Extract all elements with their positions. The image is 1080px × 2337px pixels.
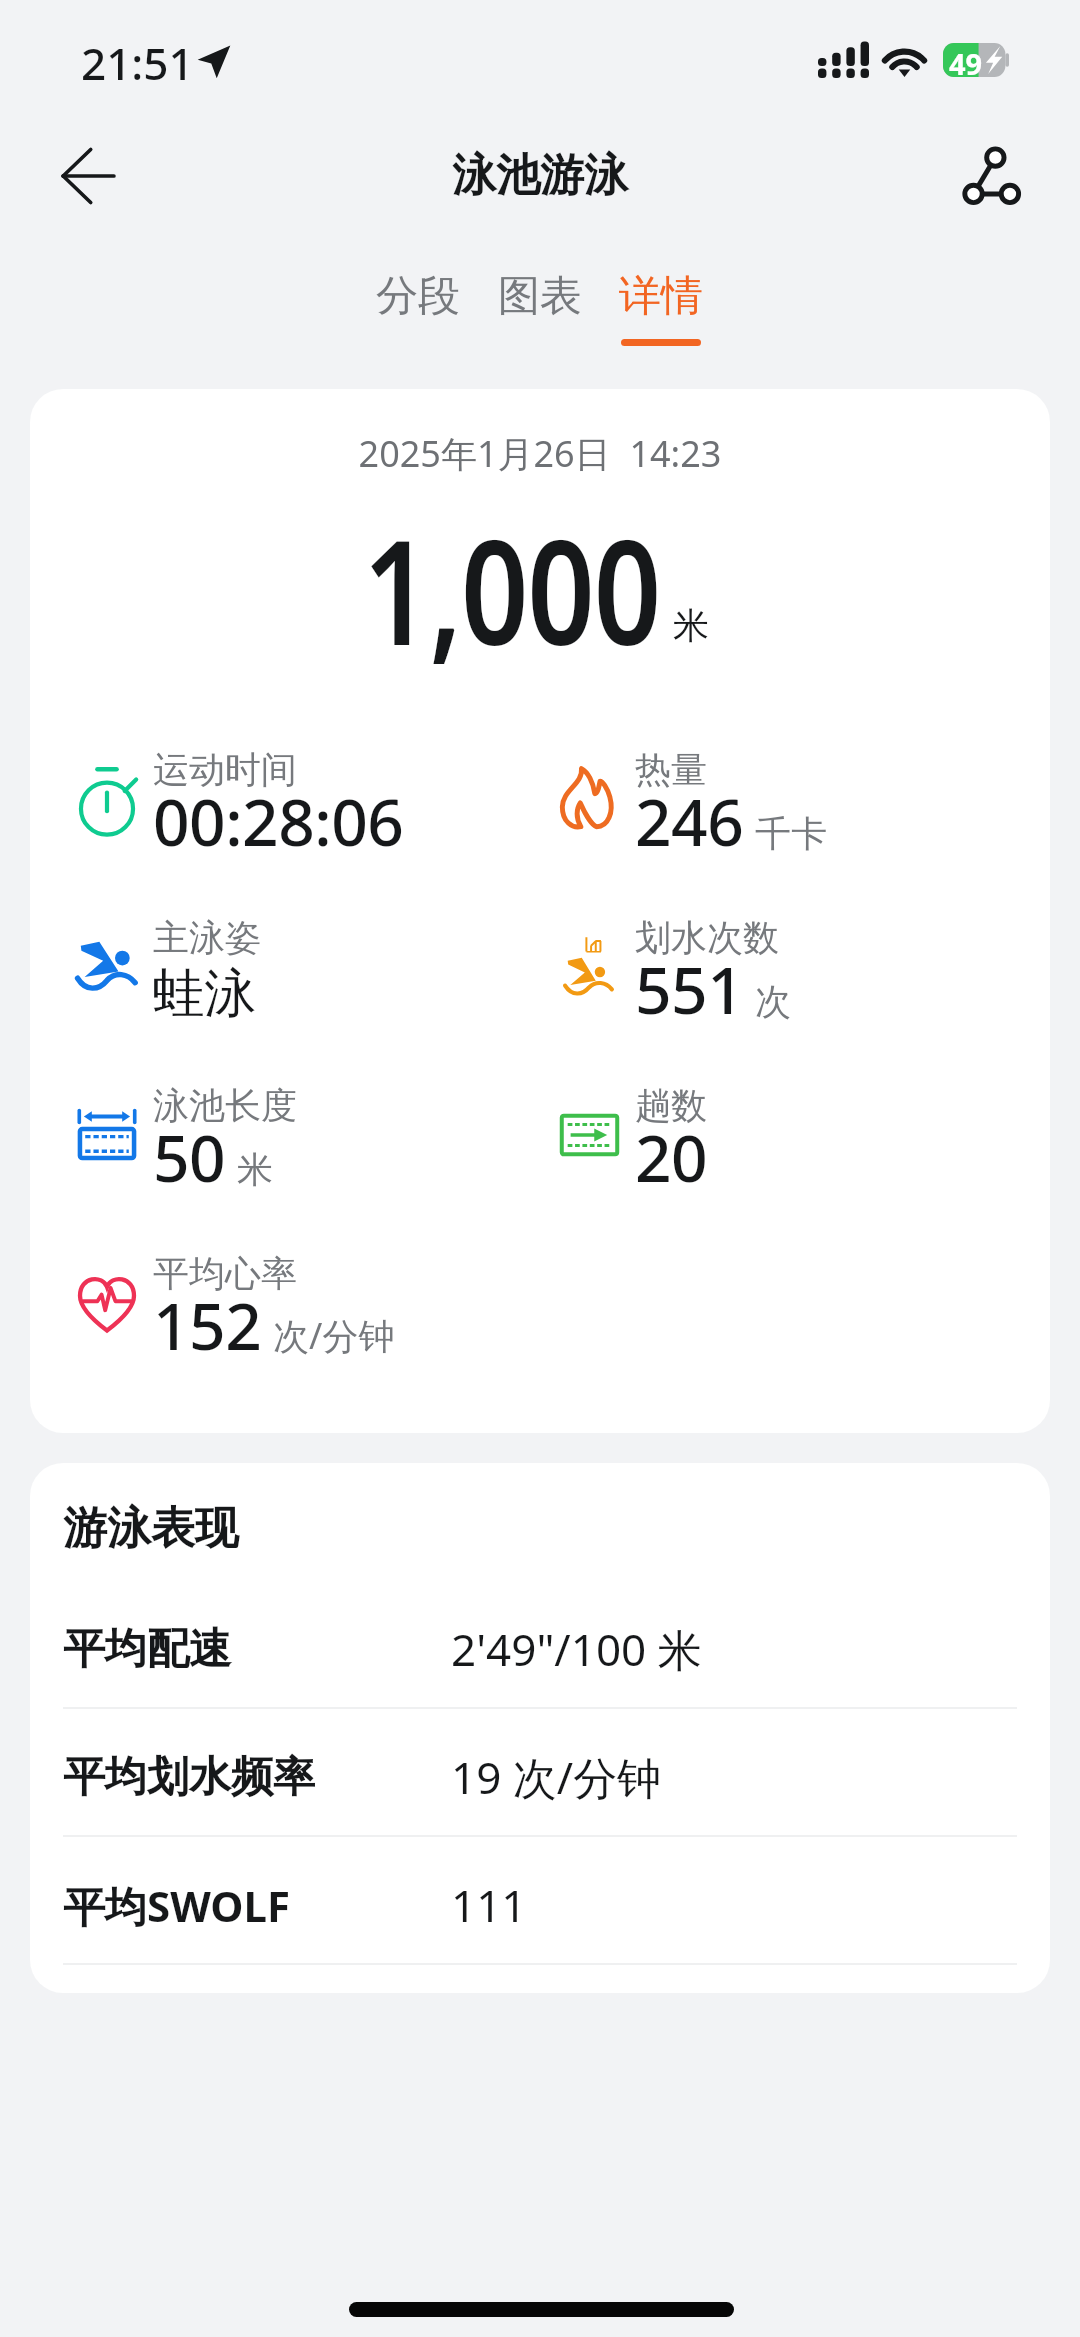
staticText: 平均SWOLF [63, 1877, 484, 1934]
staticText: 246 [635, 778, 744, 865]
staticText: 49 [949, 44, 983, 78]
staticText: 热量 [635, 747, 707, 792]
staticText: 50 [153, 1114, 226, 1201]
staticText: 平均配速 [63, 1623, 484, 1676]
staticText: 2025年1月26日 14:23 [30, 429, 1050, 478]
staticText: 详情 [619, 270, 703, 323]
staticText: 米 [673, 603, 709, 648]
button[interactable]: Back [36, 124, 140, 228]
staticText: 分段 [376, 270, 460, 323]
staticText: 111 [451, 1875, 527, 1935]
staticText: 551 [635, 946, 744, 1033]
button[interactable]: 平均划水频率 [30, 1713, 1050, 1841]
staticText: 1,000 [363, 491, 661, 687]
staticText: 游泳表现 [63, 1501, 239, 1556]
staticText: 21:51 [81, 33, 194, 93]
staticText: 千卡 [755, 811, 827, 856]
staticText: 152 [153, 1282, 262, 1369]
staticText: 平均划水频率 [63, 1751, 484, 1804]
staticText: 主泳姿 [153, 915, 261, 960]
staticText: 图表 [498, 270, 582, 323]
staticText: 次/分钟 [273, 1311, 395, 1360]
staticText: 泳池长度 [153, 1083, 297, 1128]
button[interactable]: 详情 [600, 270, 722, 346]
staticText: 蛙泳 [153, 961, 256, 1027]
button[interactable]: 平均配速 [30, 1585, 1050, 1713]
staticText: 平均心率 [153, 1251, 297, 1296]
staticText: 00:28:06 [153, 778, 404, 865]
button[interactable]: Share [940, 124, 1044, 228]
staticText: 泳池游泳 [452, 148, 628, 203]
staticText: 趟数 [635, 1083, 707, 1128]
button[interactable]: 图表 [479, 270, 601, 346]
button[interactable]: 分段 [357, 270, 479, 346]
button[interactable]: 平均SWOLF [30, 1841, 1050, 1969]
staticText: 20 [635, 1114, 708, 1201]
staticText: 划水次数 [635, 915, 779, 960]
staticText: 米 [237, 1147, 273, 1192]
staticText: 运动时间 [153, 747, 297, 792]
staticText: 2'49"/100 米 [451, 1619, 702, 1679]
staticText: 次 [755, 979, 791, 1024]
staticText: 19 次/分钟 [451, 1747, 662, 1807]
